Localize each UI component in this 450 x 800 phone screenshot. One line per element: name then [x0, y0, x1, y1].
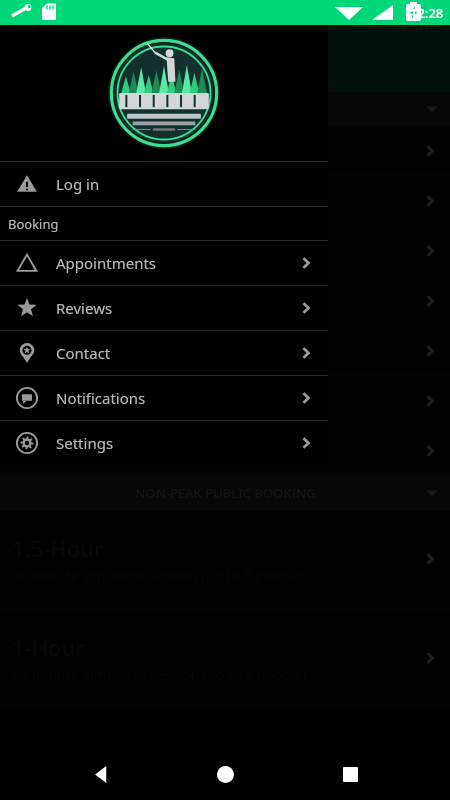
button[interactable] [0, 176, 450, 225]
button[interactable] [0, 226, 450, 275]
button[interactable]: Settings [0, 421, 328, 465]
button[interactable]: Reviews [0, 286, 328, 330]
other: Collapse [426, 103, 438, 115]
staticText: 2.5-Hour [12, 136, 100, 165]
staticText: Settings [56, 433, 114, 453]
other: Collapse [426, 487, 438, 499]
button[interactable]: Home [201, 750, 249, 798]
staticText: 4-Hour [12, 436, 82, 465]
staticText: NON-PEAK PUBLIC BOOKING [135, 484, 316, 502]
staticText: Reviews [56, 298, 113, 318]
button[interactable] [0, 376, 450, 425]
button[interactable]: Back [77, 750, 125, 798]
button[interactable]: Log in [0, 162, 328, 206]
staticText: Booking [8, 215, 59, 233]
button[interactable] [0, 326, 450, 375]
button[interactable]: Appointments [0, 241, 328, 285]
button[interactable]: 4-Hour [0, 426, 450, 475]
staticText: Log in [56, 174, 100, 194]
button[interactable]: Notifications [0, 376, 328, 420]
button[interactable]: Recent apps [326, 750, 374, 798]
button[interactable]: 2.5-Hour [0, 126, 450, 175]
staticText: Appointments [56, 253, 157, 273]
staticText: Contact [56, 343, 111, 363]
button[interactable]: Collapse [0, 92, 450, 126]
staticText: 12:28 [410, 4, 444, 22]
staticText: Notifications [56, 388, 146, 408]
button[interactable] [0, 276, 450, 325]
button[interactable]: Contact [0, 331, 328, 375]
